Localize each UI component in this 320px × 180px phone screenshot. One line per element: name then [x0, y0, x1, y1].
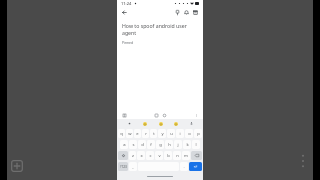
button[interactable]: Enter	[189, 162, 202, 171]
button[interactable]: r	[142, 129, 149, 138]
button[interactable]: Archive	[191, 8, 200, 17]
button[interactable]: w	[126, 129, 133, 138]
staticText: c	[149, 153, 152, 159]
button[interactable]: a	[120, 140, 128, 149]
button[interactable]: l	[192, 140, 200, 149]
button[interactable]: Pin note	[173, 8, 182, 17]
button[interactable]: Emoji suggestion	[157, 120, 164, 127]
button[interactable]: Backspace	[191, 151, 202, 160]
staticText: u	[170, 131, 173, 137]
staticText: ,	[132, 164, 134, 170]
button[interactable]: t	[150, 129, 157, 138]
staticText: i	[179, 131, 181, 137]
staticText: q	[120, 131, 123, 137]
button[interactable]: p	[194, 129, 202, 138]
button[interactable]: Microphone	[188, 120, 195, 127]
staticText: b	[167, 153, 170, 159]
staticText: w	[128, 131, 132, 137]
button[interactable]: Reminder	[182, 8, 191, 17]
button[interactable]: f	[147, 140, 155, 149]
button[interactable]: h	[165, 140, 173, 149]
button[interactable]: Emoji suggestion	[141, 120, 148, 127]
staticText: a	[123, 142, 126, 148]
button[interactable]: z	[129, 151, 136, 160]
button[interactable]: i	[176, 129, 184, 138]
button[interactable]: Back	[120, 8, 129, 17]
button[interactable]: m	[182, 151, 190, 160]
staticText: g	[159, 142, 162, 148]
staticText: j	[177, 142, 179, 148]
button[interactable]: j	[174, 140, 182, 149]
staticText: m	[184, 153, 188, 159]
staticText: r	[145, 131, 147, 137]
staticText: 11:24	[121, 1, 132, 6]
button[interactable]: b	[164, 151, 172, 160]
button[interactable]: g	[156, 140, 164, 149]
button[interactable]: d	[138, 140, 146, 149]
button[interactable]: Voice input	[126, 120, 133, 127]
staticText: z	[132, 153, 134, 159]
button[interactable]: Add device	[9, 158, 25, 174]
button[interactable]: e	[134, 129, 141, 138]
button[interactable]: Emoji suggestion	[172, 120, 179, 127]
button[interactable]: k	[183, 140, 191, 149]
staticText: y	[161, 131, 164, 137]
staticText: ?123	[120, 165, 127, 169]
button[interactable]: More options	[298, 150, 308, 172]
button[interactable]: Sticker	[161, 112, 167, 118]
staticText: How to spoof android user agent	[122, 22, 198, 36]
staticText: x	[140, 153, 143, 159]
button[interactable]: More	[193, 112, 199, 118]
staticText: d	[141, 142, 144, 148]
staticText: e	[136, 131, 139, 137]
button[interactable]: ,	[129, 162, 137, 171]
button[interactable]: y	[158, 129, 166, 138]
button[interactable]: Clipboard	[153, 112, 159, 118]
staticText: s	[132, 142, 135, 148]
staticText: f	[150, 142, 152, 148]
button[interactable]: o	[185, 129, 193, 138]
button[interactable]: Keyboard settings	[121, 112, 127, 118]
button[interactable]: x	[137, 151, 145, 160]
button[interactable]: u	[167, 129, 175, 138]
staticText: o	[188, 131, 191, 137]
staticText: Pinned	[122, 40, 134, 45]
staticText: p	[197, 131, 200, 137]
staticText: v	[158, 153, 161, 159]
button[interactable]: s	[129, 140, 137, 149]
staticText: .	[183, 164, 185, 170]
staticText: t	[153, 131, 155, 137]
staticText: n	[176, 153, 179, 159]
button[interactable]: v	[155, 151, 163, 160]
staticText: h	[168, 142, 171, 148]
staticText: l	[195, 142, 197, 148]
button[interactable]: q	[118, 129, 125, 138]
button[interactable]: c	[146, 151, 154, 160]
staticText: k	[186, 142, 189, 148]
button[interactable]: Shift	[118, 151, 128, 160]
button[interactable]: n	[173, 151, 181, 160]
button[interactable]: ?123	[118, 162, 128, 171]
